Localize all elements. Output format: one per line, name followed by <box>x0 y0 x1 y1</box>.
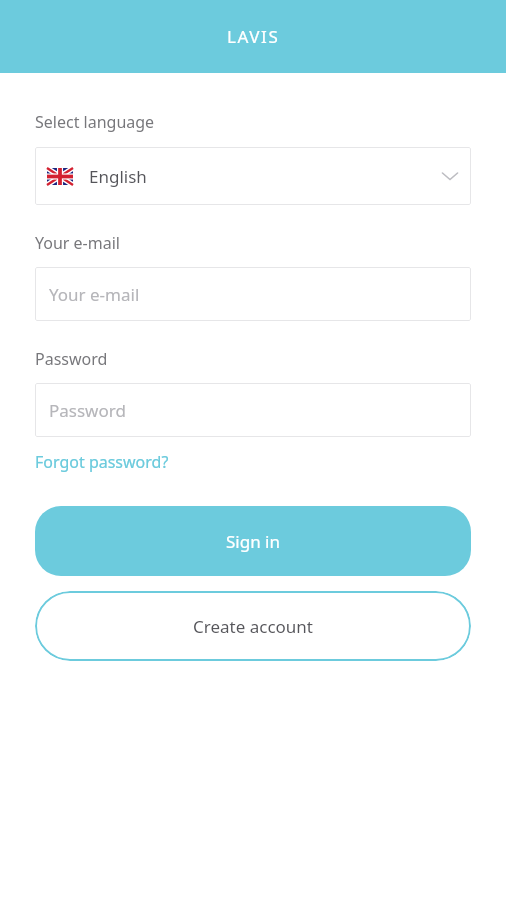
button[interactable]: Your e-mail <box>35 267 471 321</box>
button[interactable]: Forgot password? <box>35 451 169 473</box>
staticText: Your e-mail <box>49 283 140 306</box>
staticText: LAVIS <box>227 25 280 48</box>
staticText: Create account <box>193 615 313 638</box>
staticText: Your e-mail <box>35 232 120 254</box>
staticText: Select language <box>35 111 155 133</box>
button[interactable]: English <box>35 147 471 205</box>
button[interactable]: Sign in <box>35 506 471 576</box>
other: Expand language list <box>441 171 459 181</box>
staticText: Password <box>35 348 108 370</box>
staticText: English <box>89 165 147 188</box>
staticText: Forgot password? <box>35 451 169 473</box>
button[interactable]: Password <box>35 383 471 437</box>
staticText: Password <box>49 399 126 422</box>
staticText: Sign in <box>226 530 280 553</box>
button[interactable]: Create account <box>35 591 471 661</box>
